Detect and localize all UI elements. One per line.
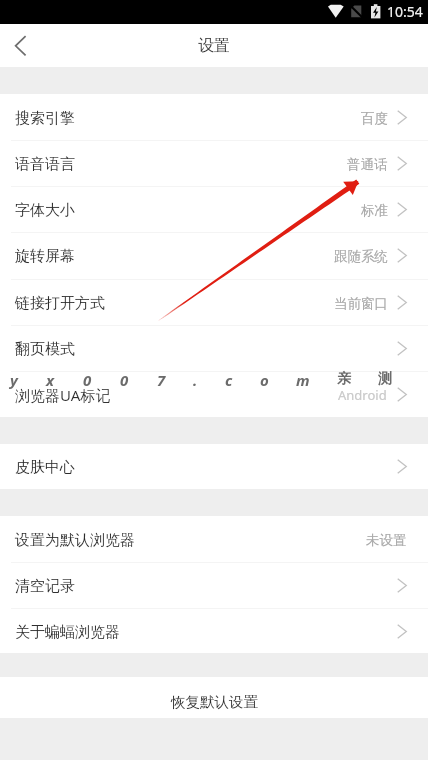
staticText: 关于蝙蝠浏览器 <box>15 623 120 642</box>
staticText: 跟随系统 <box>334 248 388 265</box>
staticText: 标准 <box>361 202 388 219</box>
staticText: m <box>296 370 310 390</box>
button[interactable]: Back <box>0 24 46 67</box>
staticText: 设置 <box>198 36 230 56</box>
staticText: 当前窗口 <box>334 295 388 312</box>
button[interactable]: 浏览器UA标记 <box>0 371 428 417</box>
staticText: 恢复默认设置 <box>171 693 258 711</box>
staticText: x <box>46 370 55 390</box>
staticText: 搜索引擎 <box>15 109 75 128</box>
staticText: 皮肤中心 <box>15 458 75 477</box>
staticText: 7 <box>157 370 166 390</box>
button[interactable]: 链接打开方式 <box>0 279 428 325</box>
staticText: o <box>260 370 269 390</box>
button[interactable]: 设置为默认浏览器 <box>0 516 428 562</box>
button[interactable]: 关于蝙蝠浏览器 <box>0 608 428 654</box>
staticText: 0 <box>83 370 92 390</box>
staticText: c <box>225 370 233 390</box>
staticText: 0 <box>120 370 129 390</box>
staticText: . <box>193 370 198 390</box>
staticText: 浏览器UA标记 <box>15 385 111 405</box>
staticText: 设置为默认浏览器 <box>15 531 135 550</box>
staticText: 测 <box>378 370 392 388</box>
button[interactable]: 搜索引擎 <box>0 94 428 140</box>
staticText: 10:54 <box>387 2 423 21</box>
button[interactable]: 翻页模式 <box>0 325 428 371</box>
staticText: 百度 <box>361 110 388 127</box>
staticText: 普通话 <box>347 156 388 173</box>
staticText: 翻页模式 <box>15 340 75 359</box>
staticText: 未设置 <box>366 532 407 549</box>
staticText: 语音语言 <box>15 155 75 174</box>
button[interactable]: 旋转屏幕 <box>0 232 428 278</box>
staticText: 链接打开方式 <box>15 294 105 313</box>
staticText: y <box>10 370 18 390</box>
staticText: 旋转屏幕 <box>15 247 75 266</box>
button[interactable]: 字体大小 <box>0 186 428 232</box>
button[interactable]: 语音语言 <box>0 140 428 186</box>
button[interactable]: 恢复默认设置 <box>0 677 428 718</box>
staticText: 字体大小 <box>15 201 75 220</box>
staticText: Android <box>338 386 387 404</box>
staticText: 亲 <box>337 370 351 388</box>
staticText: 清空记录 <box>15 577 75 596</box>
button[interactable]: 清空记录 <box>0 562 428 608</box>
button[interactable]: 皮肤中心 <box>0 444 428 489</box>
